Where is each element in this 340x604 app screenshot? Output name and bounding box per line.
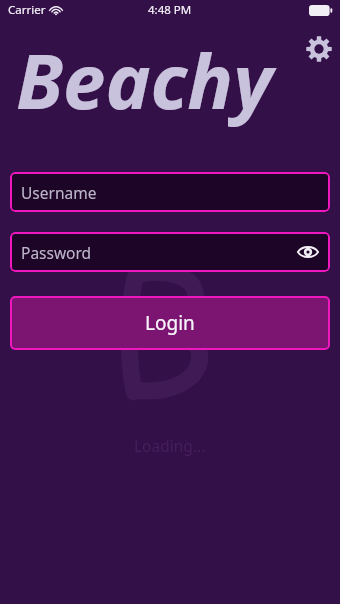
staticText: 4:48 PM (148, 2, 192, 18)
staticText: Login (145, 310, 195, 336)
staticText: Loading... (134, 435, 206, 456)
staticText: Beachy (16, 28, 273, 132)
button[interactable]: Username (10, 172, 330, 212)
button[interactable]: Show password (295, 242, 321, 262)
button[interactable]: Settings (304, 34, 334, 64)
staticText: Username (21, 182, 97, 203)
staticText: Password (21, 242, 92, 263)
button[interactable]: Login (10, 296, 330, 350)
staticText: Carrier (8, 2, 46, 18)
button[interactable]: Password (10, 232, 330, 272)
